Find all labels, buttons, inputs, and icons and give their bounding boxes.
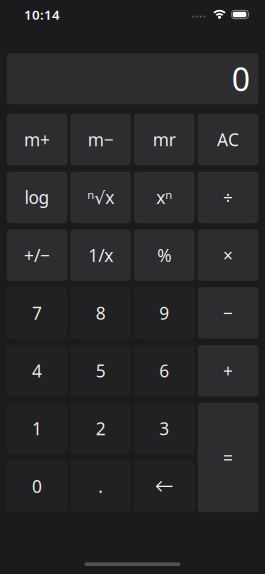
staticText: m− — [88, 128, 114, 151]
staticText: 9 — [159, 301, 169, 324]
staticText: 10:14 — [24, 6, 60, 23]
button[interactable]: 6 — [134, 345, 195, 396]
staticText: m+ — [24, 128, 50, 151]
staticText: 4 — [32, 359, 42, 382]
button[interactable]: +/− — [7, 229, 67, 281]
staticText: 6 — [159, 359, 169, 382]
staticText: 7 — [32, 301, 42, 324]
button[interactable]: 7 — [7, 287, 67, 339]
button[interactable]: 3 — [134, 403, 195, 454]
button[interactable]: ⁿ√x — [70, 172, 131, 223]
staticText: ÷ — [223, 186, 233, 209]
button[interactable]: × — [198, 229, 258, 281]
button[interactable]: 4 — [7, 345, 67, 396]
staticText: − — [223, 301, 233, 324]
button[interactable]: Backspace — [134, 461, 195, 512]
button[interactable]: mr — [134, 114, 195, 165]
staticText: ⁿ√x — [87, 186, 114, 209]
button[interactable]: = — [198, 403, 258, 512]
button[interactable]: 5 — [70, 345, 131, 396]
staticText: 1 — [32, 417, 42, 440]
staticText: 8 — [96, 301, 106, 324]
button[interactable]: ÷ — [198, 172, 258, 223]
staticText: 2 — [96, 417, 106, 440]
staticText: 5 — [96, 359, 106, 382]
staticText: % — [157, 244, 171, 267]
staticText: log — [24, 186, 49, 209]
button[interactable]: % — [134, 229, 195, 281]
button[interactable]: m− — [70, 114, 131, 165]
button[interactable]: AC — [198, 114, 258, 165]
button[interactable]: . — [70, 461, 131, 512]
button[interactable]: 8 — [70, 287, 131, 339]
staticText: × — [223, 244, 233, 267]
button[interactable]: 1/x — [70, 229, 131, 281]
button[interactable]: 1 — [7, 403, 67, 454]
staticText: +/− — [24, 244, 50, 267]
staticText: + — [223, 359, 233, 382]
button[interactable]: 2 — [70, 403, 131, 454]
staticText: = — [223, 446, 233, 469]
staticText: 3 — [159, 417, 169, 440]
staticText: 0 — [32, 475, 42, 498]
staticText: . — [98, 475, 103, 498]
button[interactable]: 9 — [134, 287, 195, 339]
button[interactable]: + — [198, 345, 258, 396]
button[interactable]: xⁿ — [134, 172, 195, 223]
staticText: xⁿ — [156, 186, 172, 209]
staticText: 0 — [232, 58, 250, 100]
button[interactable]: 0 — [7, 461, 67, 512]
staticText: mr — [153, 128, 176, 151]
staticText: AC — [217, 128, 239, 151]
button[interactable]: − — [198, 287, 258, 339]
staticText: 1/x — [88, 244, 113, 267]
button[interactable]: m+ — [7, 114, 67, 165]
button[interactable]: log — [7, 172, 67, 223]
